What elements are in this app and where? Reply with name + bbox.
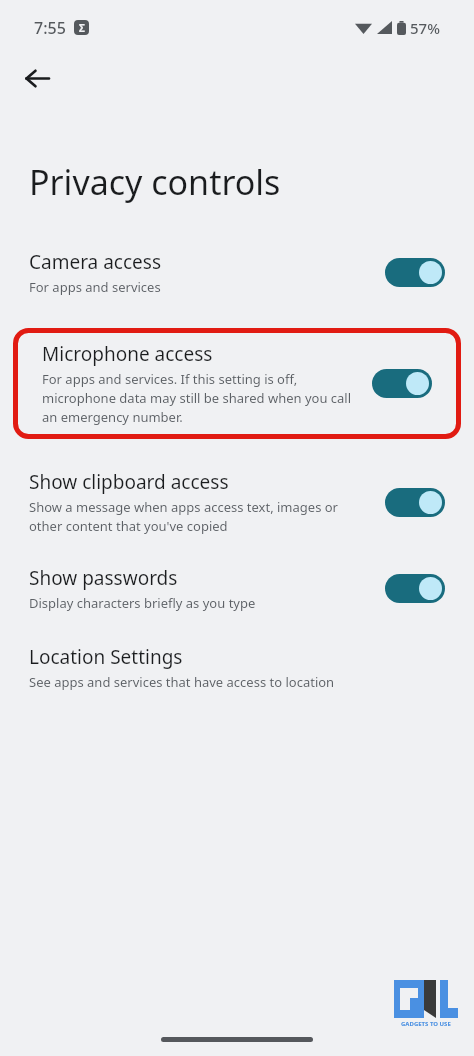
button[interactable]: Back bbox=[14, 55, 60, 101]
staticText: Microphone access bbox=[42, 341, 213, 367]
staticText: Σ bbox=[79, 21, 85, 35]
staticText: 7:55 bbox=[34, 17, 66, 39]
staticText: Show passwords bbox=[29, 565, 178, 591]
button[interactable]: Show clipboard access bbox=[0, 469, 474, 535]
button[interactable]: Camera access bbox=[0, 249, 474, 296]
staticText: Privacy controls bbox=[29, 159, 281, 205]
button[interactable]: Toggle bbox=[385, 258, 445, 287]
staticText: For apps and services bbox=[29, 278, 161, 296]
staticText: Camera access bbox=[29, 249, 162, 275]
staticText: For apps and services. If this setting i… bbox=[42, 370, 360, 426]
staticText: Show clipboard access bbox=[29, 469, 229, 495]
button[interactable]: Microphone access bbox=[13, 341, 461, 426]
staticText: Show a message when apps access text, im… bbox=[29, 498, 373, 535]
staticText: See apps and services that have access t… bbox=[29, 673, 335, 691]
button[interactable]: Location Settings bbox=[0, 644, 474, 691]
staticText: Display characters briefly as you type bbox=[29, 594, 256, 612]
staticText: 57% bbox=[410, 18, 440, 38]
button[interactable]: Toggle bbox=[385, 488, 445, 517]
button[interactable]: Toggle bbox=[372, 369, 432, 398]
button[interactable]: Show passwords bbox=[0, 565, 474, 612]
staticText: GADGETS TO USE bbox=[401, 1020, 451, 1028]
staticText: Location Settings bbox=[29, 644, 183, 670]
button[interactable]: Toggle bbox=[385, 574, 445, 603]
